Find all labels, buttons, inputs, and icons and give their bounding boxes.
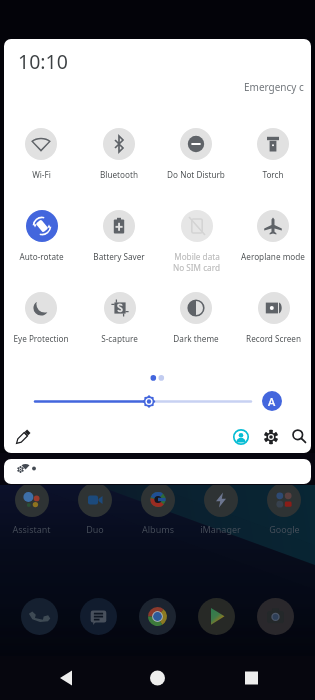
button[interactable]: Google xyxy=(267,483,301,535)
staticText: Record Screen xyxy=(246,333,301,344)
button[interactable]: Search xyxy=(288,425,310,447)
staticText: Mobile data xyxy=(174,251,220,262)
button[interactable]: Dark theme xyxy=(158,292,234,354)
staticText: Google xyxy=(269,523,300,535)
staticText: 10:10 xyxy=(18,48,68,75)
staticText: A xyxy=(268,394,276,409)
staticText: S-capture xyxy=(101,333,138,344)
staticText: Albums xyxy=(142,523,174,535)
staticText: Aeroplane mode xyxy=(241,251,305,262)
button[interactable]: Duo xyxy=(78,483,112,535)
button[interactable]: Do Not Disturb xyxy=(158,128,234,190)
button[interactable]: Torch xyxy=(235,128,311,190)
button[interactable]: Record Screen xyxy=(235,292,311,354)
staticText: Dark theme xyxy=(173,333,219,344)
button[interactable] xyxy=(4,459,311,484)
button[interactable]: Aeroplane mode xyxy=(235,210,311,272)
staticText: iManager xyxy=(200,523,241,535)
button[interactable] xyxy=(21,598,58,635)
staticText: Emergency c xyxy=(244,80,304,94)
button[interactable]: Emergency c xyxy=(244,80,304,94)
staticText: Auto-rotate xyxy=(19,251,64,262)
button[interactable]: User account xyxy=(230,426,252,448)
button[interactable] xyxy=(198,598,235,635)
button[interactable]: Bluetooth xyxy=(81,128,157,190)
button[interactable]: Albums xyxy=(141,483,175,535)
button[interactable] xyxy=(80,598,117,635)
staticText: Eye Protection xyxy=(13,333,69,344)
button[interactable]: Eye Protection xyxy=(4,292,79,354)
staticText: Do Not Disturb xyxy=(167,169,225,180)
button[interactable]: Settings xyxy=(260,426,282,448)
button[interactable]: Assistant xyxy=(12,483,51,535)
button[interactable]: S-capture xyxy=(81,292,157,354)
staticText: Bluetooth xyxy=(100,169,138,180)
button[interactable]: iManager xyxy=(200,483,241,535)
button[interactable]: Auto-rotate xyxy=(4,210,79,272)
button[interactable]: Battery Saver xyxy=(81,210,157,272)
button[interactable] xyxy=(139,598,176,635)
button[interactable] xyxy=(257,598,294,635)
staticText: Torch xyxy=(262,169,284,180)
staticText: Wi-Fi xyxy=(32,169,51,180)
staticText: No SIM card xyxy=(173,262,220,272)
button[interactable]: Auto brightness xyxy=(262,391,282,411)
staticText: Duo xyxy=(86,523,104,535)
staticText: Assistant xyxy=(12,523,51,535)
button[interactable]: Edit xyxy=(12,426,34,448)
staticText: Battery Saver xyxy=(93,251,145,262)
button[interactable]: Wi-Fi xyxy=(4,128,79,190)
button[interactable]: Mobile data xyxy=(158,210,234,272)
